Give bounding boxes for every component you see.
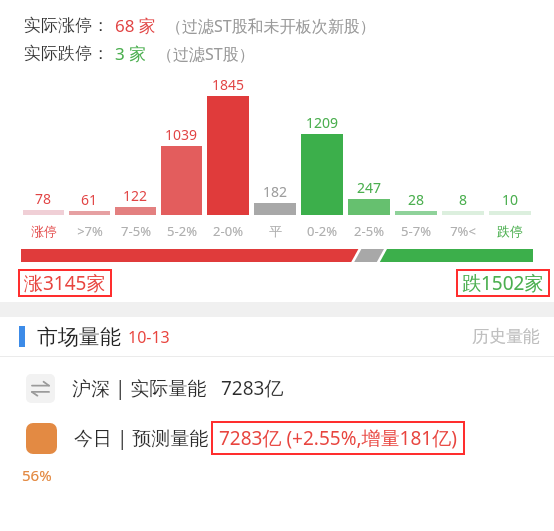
staticText: 5-2% — [167, 222, 197, 240]
staticText: >7% — [77, 222, 103, 240]
staticText: （过滤ST股和未开板次新股） — [166, 15, 376, 37]
staticText: 沪深 | 实际量能 — [72, 375, 207, 401]
staticText: 7-5% — [121, 222, 151, 240]
staticText: 68 家 — [115, 14, 156, 37]
staticText: 122 — [123, 186, 148, 205]
staticText: 1845 — [212, 75, 245, 94]
staticText: 实际跌停： — [24, 43, 109, 64]
staticText: 247 — [357, 178, 382, 197]
staticText: 10 — [502, 190, 519, 209]
staticText: 8 — [459, 190, 468, 209]
staticText: 28 — [408, 190, 425, 209]
staticText: 历史量能 — [472, 326, 540, 347]
staticText: 跌1502家 — [462, 270, 544, 296]
button[interactable]: 跌1502家 — [462, 270, 544, 296]
staticText: 1039 — [165, 125, 198, 144]
staticText: 2-0% — [213, 222, 243, 240]
staticText: 7283亿 (+2.55%,增量181亿) — [219, 425, 457, 451]
staticText: 2-5% — [354, 222, 384, 240]
staticText: 7%< — [450, 222, 476, 240]
staticText: 跌停 — [497, 223, 523, 239]
button[interactable] — [21, 249, 533, 262]
button[interactable]: 市场量能 — [0, 317, 554, 356]
button[interactable]: 涨3145家 — [24, 270, 106, 296]
staticText: 涨停 — [31, 223, 57, 239]
staticText: 56% — [22, 465, 52, 485]
staticText: 市场量能 — [37, 324, 121, 350]
staticText: 涨3145家 — [24, 270, 106, 296]
staticText: 平 — [269, 223, 282, 239]
staticText: 78 — [35, 189, 52, 208]
staticText: 182 — [263, 182, 288, 201]
staticText: 10-13 — [128, 326, 170, 348]
staticText: 61 — [81, 190, 98, 209]
staticText: 5-7% — [401, 222, 431, 240]
staticText: （过滤ST股） — [157, 43, 255, 65]
staticText: 今日 | 预测量能 — [74, 425, 209, 451]
button[interactable]: 切换 — [0, 369, 554, 407]
button[interactable]: 今日 | 预测量能 — [0, 417, 554, 459]
staticText: 7283亿 — [221, 375, 284, 401]
staticText: 0-2% — [307, 222, 337, 240]
staticText: 1209 — [306, 113, 339, 132]
other: 切换 — [26, 374, 55, 403]
staticText: 3 家 — [115, 42, 147, 65]
staticText: 实际涨停： — [24, 15, 109, 36]
